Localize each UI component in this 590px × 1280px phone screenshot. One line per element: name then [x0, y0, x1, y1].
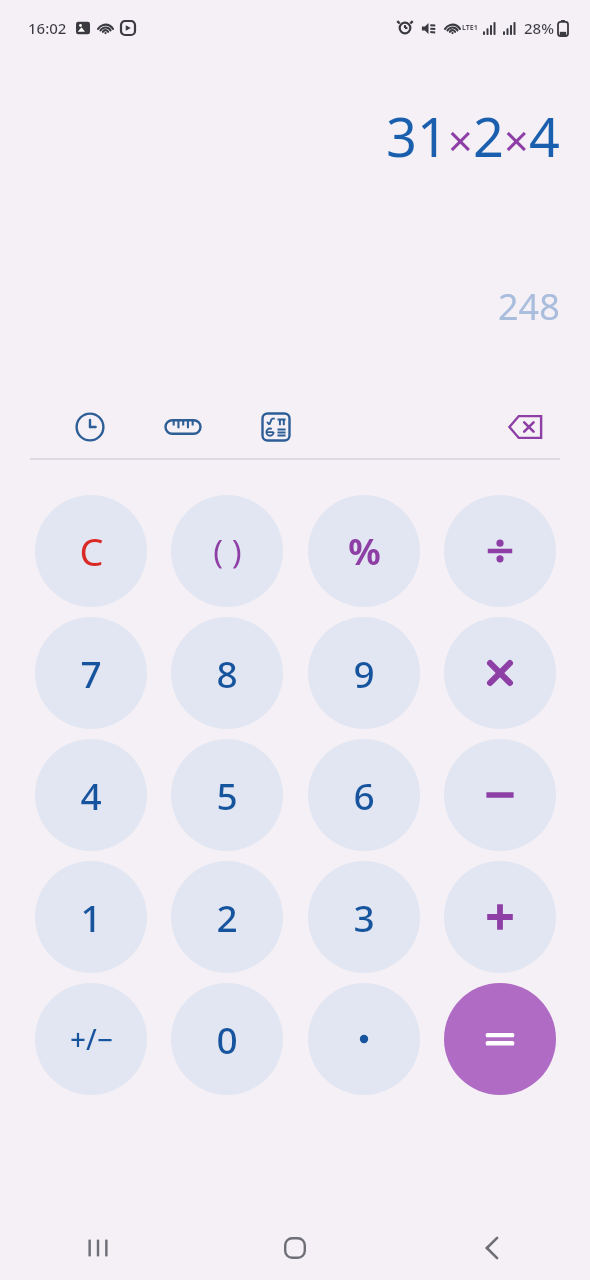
- button[interactable]: 5: [171, 739, 283, 851]
- button[interactable]: 3: [308, 861, 420, 973]
- button[interactable]: Backspace: [500, 401, 552, 453]
- staticText: 248: [498, 282, 560, 331]
- button[interactable]: 0: [171, 983, 283, 1095]
- button[interactable]: key: [308, 983, 420, 1095]
- button[interactable]: key: [444, 983, 556, 1095]
- staticText: 3: [353, 892, 375, 942]
- staticText: 4: [80, 770, 102, 820]
- button[interactable]: 6: [308, 739, 420, 851]
- button[interactable]: key: [444, 617, 556, 729]
- staticText: ( ): [213, 529, 242, 574]
- button[interactable]: key: [444, 739, 556, 851]
- staticText: 5: [216, 770, 238, 820]
- staticText: 8: [216, 648, 238, 698]
- button[interactable]: 8: [171, 617, 283, 729]
- staticText: 1: [80, 892, 102, 942]
- button[interactable]: 4: [35, 739, 147, 851]
- staticText: 28%: [524, 18, 554, 38]
- staticText: %: [348, 527, 381, 576]
- staticText: 2: [216, 892, 238, 942]
- staticText: 31×2×4: [386, 99, 560, 173]
- staticText: C: [79, 525, 104, 577]
- staticText: 9: [353, 648, 375, 698]
- button[interactable]: key: [444, 495, 556, 607]
- staticText: 0: [216, 1014, 238, 1064]
- button[interactable]: C: [35, 495, 147, 607]
- button[interactable]: ( ): [171, 495, 283, 607]
- staticText: 6: [353, 770, 375, 820]
- button[interactable]: %: [308, 495, 420, 607]
- button[interactable]: Home: [196, 1216, 393, 1280]
- button[interactable]: 2: [171, 861, 283, 973]
- button[interactable]: Recents: [0, 1216, 196, 1280]
- button[interactable]: History: [64, 401, 116, 453]
- button[interactable]: 9: [308, 617, 420, 729]
- staticText: +/−: [70, 1020, 113, 1058]
- staticText: LTE1: [462, 23, 478, 33]
- button[interactable]: Unit converter: [157, 401, 209, 453]
- staticText: 7: [80, 648, 102, 698]
- button[interactable]: Scientific calculator: [250, 401, 302, 453]
- button[interactable]: +/−: [35, 983, 147, 1095]
- button[interactable]: 1: [35, 861, 147, 973]
- staticText: 16:02: [28, 18, 67, 38]
- button[interactable]: 7: [35, 617, 147, 729]
- button[interactable]: Back: [393, 1216, 590, 1280]
- button[interactable]: key: [444, 861, 556, 973]
